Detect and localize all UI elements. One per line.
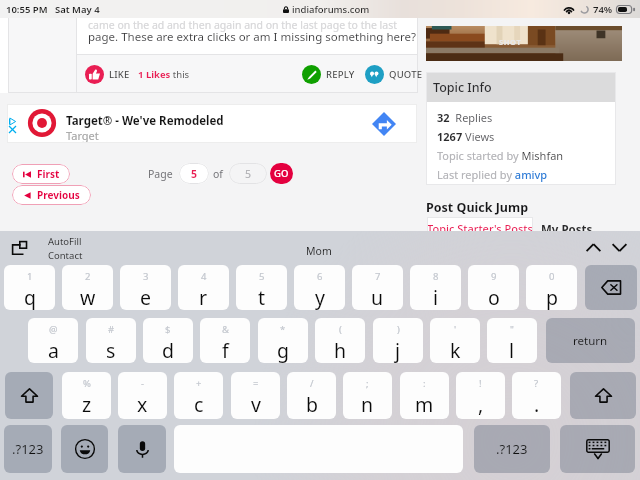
button[interactable]: First (12, 164, 70, 184)
staticText: 5 (259, 270, 265, 283)
button[interactable]: 1 (4, 265, 55, 310)
button[interactable]: % (62, 372, 111, 419)
staticText: ? (534, 377, 539, 390)
staticText: # (108, 323, 115, 336)
button[interactable]: .?123 (4, 425, 52, 473)
button[interactable]: * (258, 318, 308, 363)
button[interactable]: ( (315, 318, 365, 363)
staticText: e (140, 284, 151, 310)
button[interactable]: @ (28, 318, 78, 363)
button[interactable]: 5 (236, 265, 287, 310)
button[interactable]: ) (373, 318, 423, 363)
button[interactable]: AutoFill (11, 241, 27, 256)
staticText: AutoFill (48, 235, 82, 248)
staticText: t (258, 284, 266, 310)
button[interactable]: Previous field (586, 242, 601, 253)
staticText: LIKE (109, 68, 130, 81)
button[interactable]: & (200, 318, 250, 363)
button[interactable]: Emoji (61, 425, 108, 473)
button[interactable]: GO (270, 163, 293, 184)
staticText: Sat May 4 (55, 3, 100, 16)
staticText: REPLY (326, 68, 355, 81)
staticText: Target (66, 128, 99, 143)
button[interactable]: = (231, 372, 280, 419)
staticText: Mom (306, 244, 332, 258)
staticText: d (162, 337, 174, 363)
button[interactable]: $ (143, 318, 193, 363)
staticText: 1 Likes this (138, 68, 190, 81)
staticText: ( (339, 323, 342, 336)
staticText: = (253, 377, 259, 390)
staticText: page. These are extra clicks or am I mis… (88, 29, 416, 45)
button[interactable]: : (400, 372, 449, 419)
staticText: % (83, 377, 91, 390)
staticText: p (546, 284, 558, 310)
button[interactable]: Shift (570, 372, 636, 419)
button[interactable]: Backspace (585, 265, 637, 310)
button[interactable]: 4 (178, 265, 229, 310)
staticText: s (106, 337, 116, 363)
staticText: came on the ad and then again and on the… (88, 18, 398, 32)
staticText: . (534, 391, 540, 418)
staticText: Topic Starter's Posts (427, 221, 533, 236)
staticText: 1267 Views (437, 129, 495, 144)
button[interactable]: Hide keyboard (560, 425, 635, 473)
button[interactable]: REPLY (302, 65, 355, 84)
button[interactable]: Topic Starter's Posts (427, 217, 533, 240)
button[interactable]: .?123 (474, 425, 550, 473)
staticText: .?123 (496, 440, 528, 458)
button[interactable]: + (174, 372, 223, 419)
button[interactable]: Previous (12, 185, 91, 205)
staticText: My Posts (541, 222, 593, 238)
button[interactable]: 8 (410, 265, 461, 310)
staticText: return (573, 333, 608, 349)
button[interactable]: 5 (179, 163, 209, 184)
staticText: i (433, 284, 439, 310)
button[interactable]: ? (512, 372, 561, 419)
staticText: x (137, 391, 148, 418)
staticText: Topic Info (433, 79, 492, 96)
button[interactable]: " (487, 318, 537, 363)
button[interactable]: / (287, 372, 336, 419)
button[interactable]: 2 (62, 265, 113, 310)
staticText: Last replied by amivp (437, 167, 548, 182)
button[interactable]: QUOTE (365, 65, 423, 84)
staticText: Page (148, 167, 173, 181)
staticText: c (194, 391, 204, 418)
button[interactable]: ' (430, 318, 480, 363)
staticText: First (37, 167, 60, 181)
staticText: u (371, 284, 384, 310)
button[interactable]: LIKE (85, 64, 190, 84)
button[interactable]: 6 (294, 265, 345, 310)
button[interactable]: 3 (120, 265, 171, 310)
staticText: 7 (375, 270, 381, 283)
button[interactable]: ; (343, 372, 392, 419)
staticText: y (315, 284, 325, 310)
staticText: n (361, 391, 374, 418)
button[interactable]: ! (456, 372, 505, 419)
button[interactable]: Target® - We've Remodeled (7, 104, 417, 143)
staticText: 6 (317, 270, 323, 283)
staticText: Post Quick Jump (426, 199, 529, 216)
staticText: 2 (85, 270, 91, 283)
staticText: w (80, 284, 96, 310)
button[interactable]: - (118, 372, 167, 419)
staticText: b (306, 391, 318, 418)
staticText: o (488, 284, 500, 310)
staticText: of (213, 167, 223, 181)
button[interactable]: AutoFill (48, 235, 83, 262)
button[interactable]: Return (546, 318, 635, 363)
button[interactable]: # (86, 318, 136, 363)
button[interactable]: 9 (468, 265, 519, 310)
staticText: a (48, 337, 59, 363)
button[interactable]: 0 (526, 265, 577, 310)
button[interactable]: Next field (612, 242, 627, 253)
staticText: ' (454, 323, 457, 336)
button[interactable]: Shift (5, 372, 53, 419)
staticText: - (141, 377, 145, 390)
button[interactable]: Dictation (118, 425, 166, 473)
button[interactable]: 7 (352, 265, 403, 310)
staticText: j (395, 337, 401, 363)
staticText: " (510, 323, 514, 336)
